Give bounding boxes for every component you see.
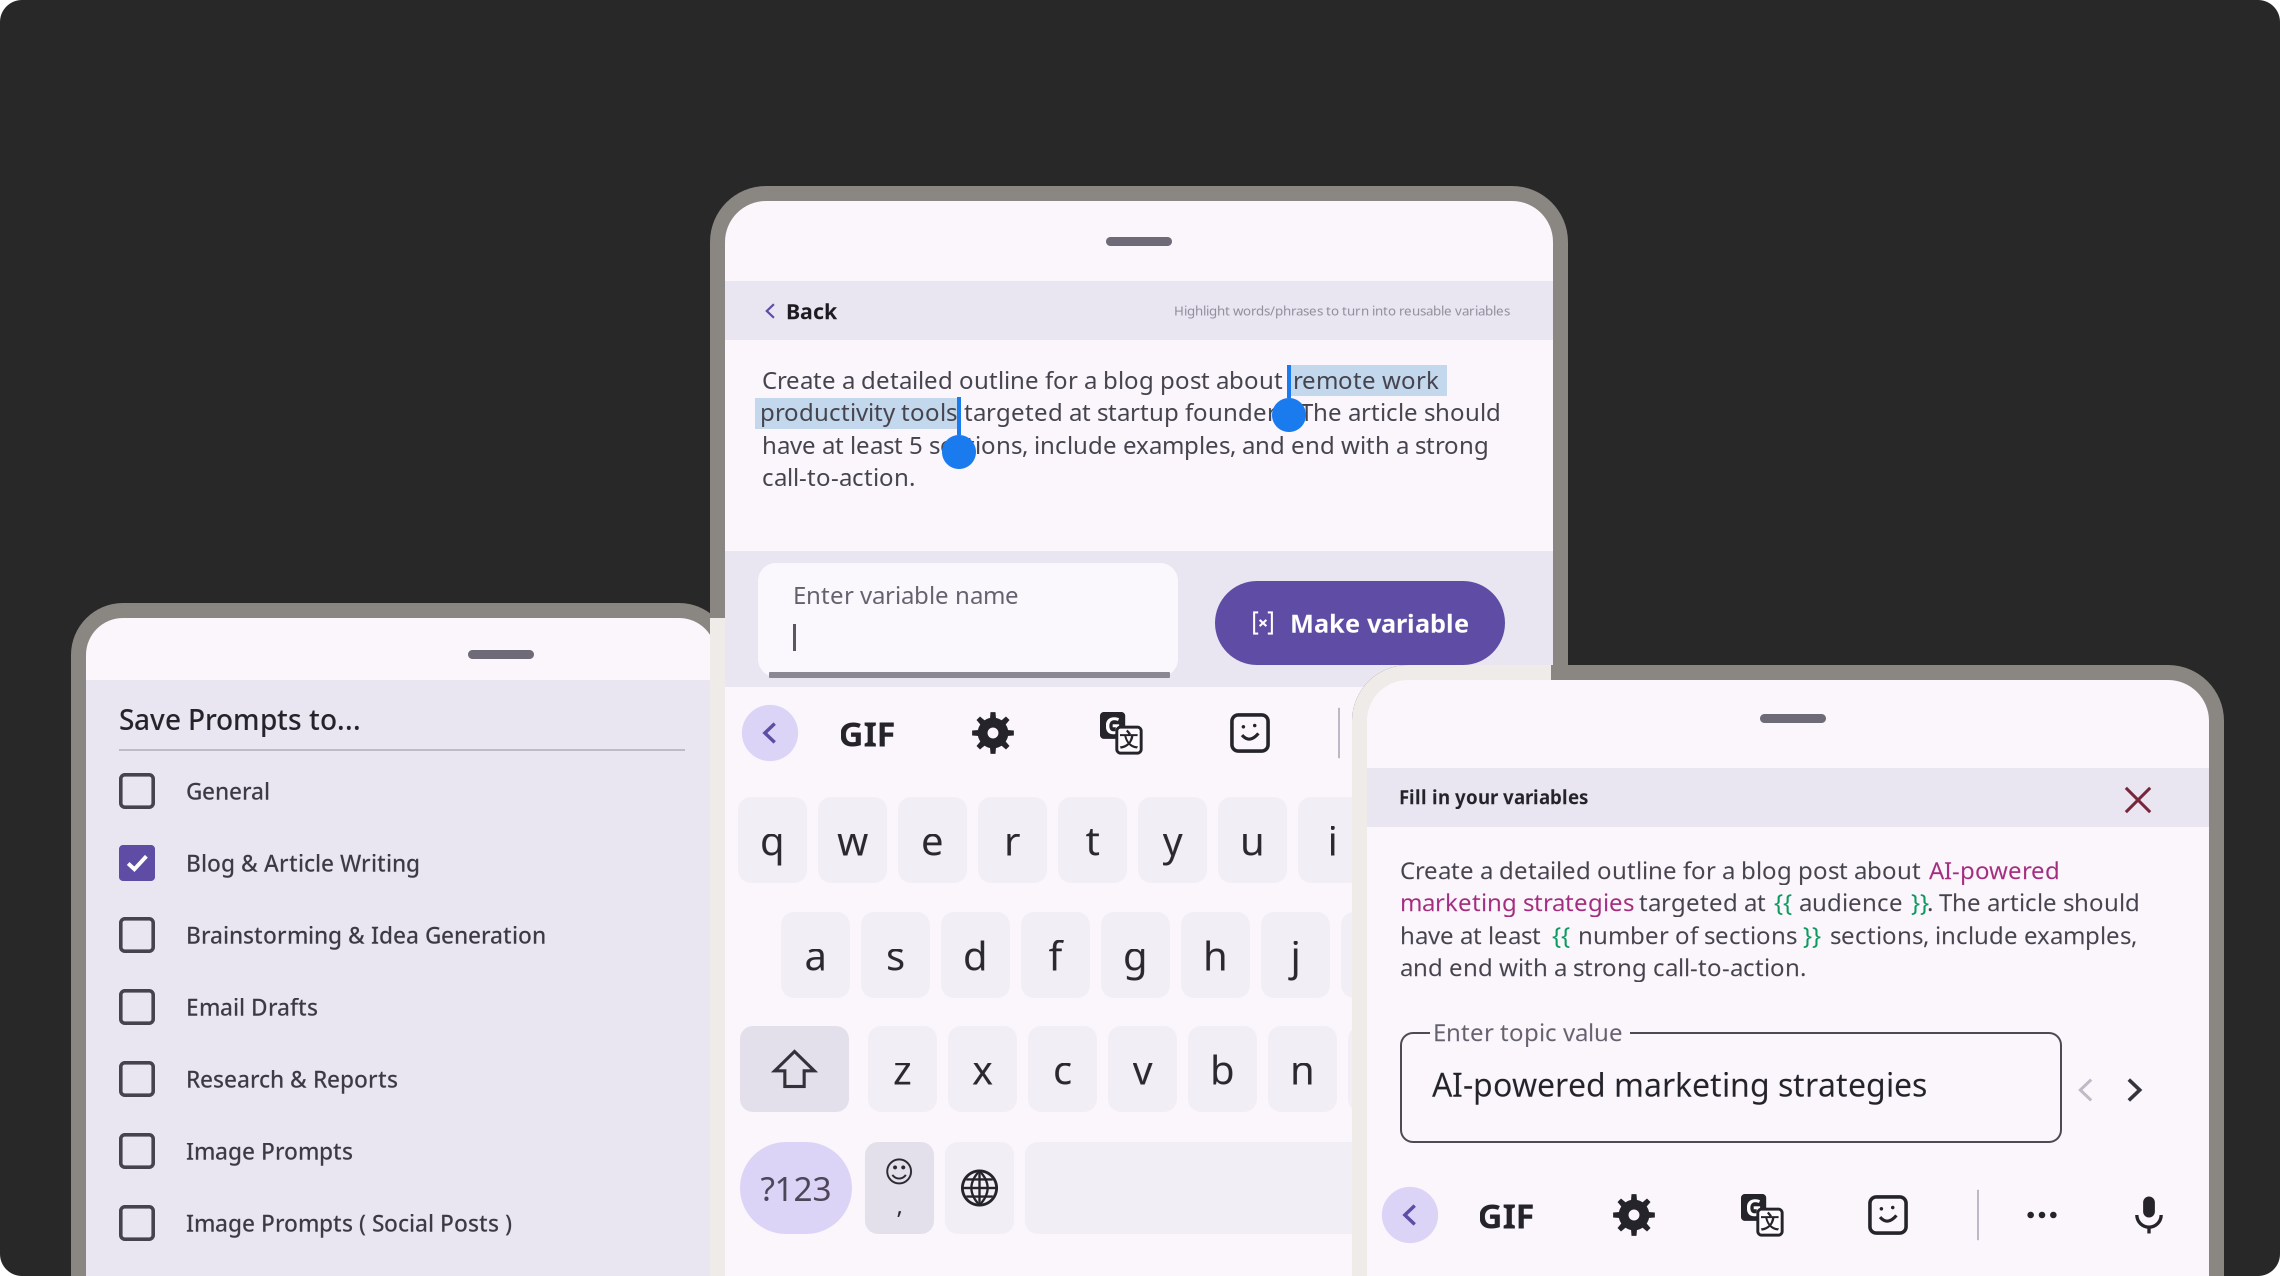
- button[interactable]: a: [781, 912, 850, 998]
- button[interactable]: GIF: [825, 712, 909, 754]
- button[interactable]: Next variable: [2121, 1077, 2147, 1103]
- button[interactable]: Space: [1025, 1142, 1380, 1234]
- button[interactable]: Change language: [945, 1142, 1014, 1234]
- button[interactable]: Brainstorming & Idea Generation: [119, 909, 685, 961]
- staticText: AI-powered: [1929, 854, 2060, 886]
- button[interactable]: Settings: [972, 712, 1014, 754]
- staticText: Enter variable name: [793, 579, 1019, 611]
- button[interactable]: c: [1028, 1026, 1097, 1112]
- staticText: targeted at startup founders. The articl…: [964, 396, 1501, 428]
- button[interactable]: Blog & Article Writing: [119, 837, 685, 889]
- button[interactable]: m: [1348, 1026, 1417, 1112]
- staticText: General: [186, 776, 270, 806]
- staticText: GIF: [1477, 1192, 1534, 1238]
- button[interactable]: u: [1218, 797, 1287, 883]
- staticText: q: [760, 813, 785, 866]
- button[interactable]: w: [818, 797, 887, 883]
- button[interactable]: h: [1181, 912, 1250, 998]
- staticText: o: [1400, 813, 1424, 866]
- staticText: z: [893, 1042, 912, 1095]
- staticText: b: [1210, 1042, 1235, 1095]
- staticText: g: [1123, 928, 1148, 981]
- staticText: 文: [1760, 1211, 1779, 1234]
- button[interactable]: More: [2021, 1194, 2063, 1236]
- button[interactable]: Image Prompts: [119, 1125, 685, 1177]
- button[interactable]: d: [941, 912, 1010, 998]
- button[interactable]: p: [1458, 797, 1527, 883]
- button[interactable]: ?123: [740, 1142, 852, 1234]
- staticText: remote work: [1293, 364, 1439, 396]
- button[interactable]: y: [1138, 797, 1207, 883]
- staticText: Image Prompts: [186, 1136, 353, 1166]
- button[interactable]: r: [978, 797, 1047, 883]
- button[interactable]: k: [1341, 912, 1410, 998]
- button[interactable]: j: [1261, 912, 1330, 998]
- staticText: Highlight words/phrases to turn into reu…: [1174, 301, 1510, 319]
- button[interactable]: b: [1188, 1026, 1257, 1112]
- staticText: audience: [1799, 886, 1903, 918]
- button[interactable]: Image Prompts ( Social Posts ): [119, 1197, 685, 1249]
- staticText: r: [1004, 813, 1021, 866]
- button[interactable]: Back: [762, 294, 837, 328]
- staticText: Save Prompts to...: [119, 700, 361, 738]
- staticText: AI-powered marketing strategies: [1432, 1063, 1927, 1106]
- staticText: G: [1105, 710, 1121, 740]
- staticText: Make variable: [1290, 606, 1469, 640]
- staticText: have at least 5 sections, include exampl…: [762, 429, 1489, 461]
- button[interactable]: Translate: [1741, 1194, 1783, 1236]
- staticText: GIF: [838, 710, 895, 756]
- button[interactable]: Emoji: [865, 1142, 934, 1234]
- button[interactable]: i: [1298, 797, 1367, 883]
- button[interactable]: Email Drafts: [119, 981, 685, 1033]
- staticText: ⌫: [1456, 1048, 1509, 1090]
- button[interactable]: t: [1058, 797, 1127, 883]
- staticText: {{: [1552, 919, 1570, 951]
- button[interactable]: Settings: [1613, 1194, 1655, 1236]
- button[interactable]: f: [1021, 912, 1090, 998]
- button[interactable]: Close: [2122, 784, 2154, 816]
- button[interactable]: Shift: [740, 1026, 849, 1112]
- staticText: ?123: [760, 1166, 831, 1210]
- button[interactable]: v: [1108, 1026, 1177, 1112]
- button[interactable]: z: [868, 1026, 937, 1112]
- staticText: m: [1364, 1042, 1401, 1095]
- staticText: . The article should: [1927, 886, 2140, 918]
- staticText: Email Drafts: [186, 992, 318, 1022]
- staticText: productivity tools: [760, 396, 957, 428]
- button[interactable]: Voice input: [2128, 1194, 2170, 1236]
- staticText: j: [1290, 928, 1300, 981]
- staticText: y: [1162, 813, 1182, 866]
- button[interactable]: Previous variable: [2073, 1077, 2099, 1103]
- staticText: Create a detailed outline for a blog pos…: [762, 364, 1283, 396]
- button[interactable]: l: [1421, 912, 1490, 998]
- button[interactable]: o: [1378, 797, 1447, 883]
- button[interactable]: Back: [1382, 1187, 1438, 1243]
- button[interactable]: Research & Reports: [119, 1053, 685, 1105]
- button[interactable]: GIF: [1464, 1194, 1548, 1236]
- staticText: i: [1327, 813, 1337, 866]
- button[interactable]: x: [948, 1026, 1017, 1112]
- button[interactable]: General: [119, 765, 685, 817]
- staticText: marketing strategies: [1400, 886, 1634, 918]
- button[interactable]: Back: [742, 705, 798, 761]
- button[interactable]: g: [1101, 912, 1170, 998]
- button[interactable]: Translate: [1100, 712, 1142, 754]
- button[interactable]: Period: [1388, 1142, 1457, 1234]
- staticText: and end with a strong call-to-action.: [1400, 951, 1806, 983]
- button[interactable]: Stickers: [1867, 1194, 1909, 1236]
- staticText: Create a detailed outline for a blog pos…: [1400, 854, 1921, 886]
- button[interactable]: Stickers: [1229, 712, 1271, 754]
- staticText: a: [804, 928, 826, 981]
- staticText: }}: [1911, 886, 1929, 918]
- staticText: t: [1085, 813, 1099, 866]
- button[interactable]: s: [861, 912, 930, 998]
- staticText: .: [1418, 1165, 1427, 1211]
- button[interactable]: Make variable: [1215, 581, 1505, 665]
- button[interactable]: n: [1268, 1026, 1337, 1112]
- staticText: Image Prompts ( Social Posts ): [186, 1208, 512, 1238]
- button[interactable]: q: [738, 797, 807, 883]
- staticText: ,: [896, 1189, 902, 1221]
- button[interactable]: Backspace: [1428, 1026, 1537, 1112]
- staticText: Brainstorming & Idea Generation: [186, 920, 546, 950]
- button[interactable]: e: [898, 797, 967, 883]
